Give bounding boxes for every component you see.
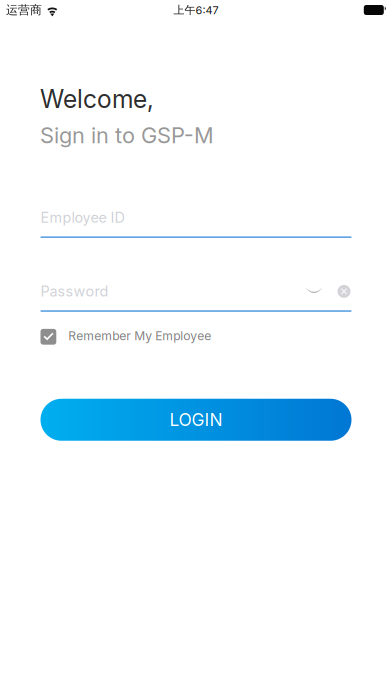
staticText: LOGIN (169, 409, 222, 430)
button[interactable]: Clear text (336, 282, 351, 300)
staticText: Welcome, (40, 84, 154, 114)
staticText: Password (40, 283, 108, 300)
staticText: 上午6:47 (173, 3, 218, 17)
staticText: Employee ID (40, 209, 124, 226)
staticText: Sign in to GSP-M (40, 122, 214, 148)
staticText: 运营商 (6, 2, 42, 17)
button[interactable]: Remember My Employee (40, 327, 351, 345)
button[interactable]: Show password (304, 282, 323, 300)
button[interactable]: LOGIN (40, 399, 351, 441)
staticText: Remember My Employee (68, 328, 211, 343)
